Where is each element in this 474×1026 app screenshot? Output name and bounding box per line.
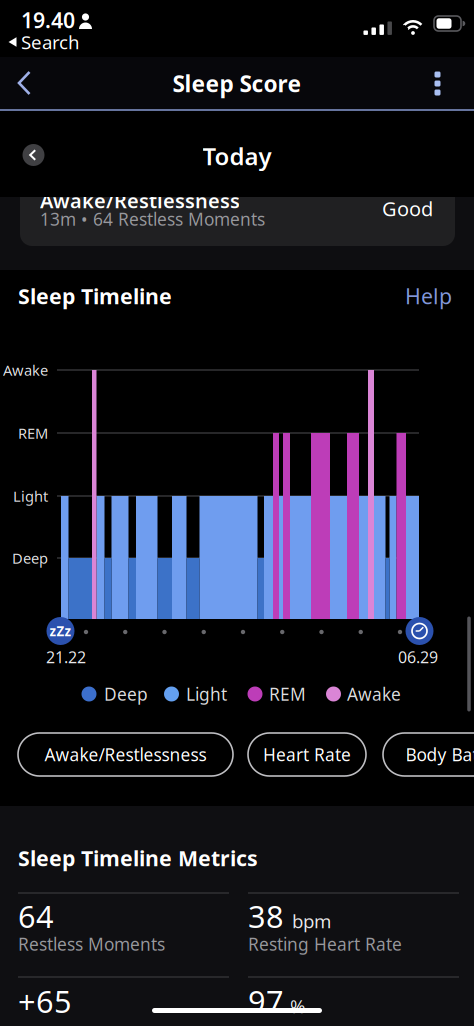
staticText: Awake (3, 360, 48, 380)
staticText: REM (18, 423, 48, 443)
button[interactable]: Previous (22, 144, 44, 166)
staticText: bpm (292, 909, 331, 933)
staticText: Awake (347, 682, 401, 705)
staticText: Sleep Score (172, 68, 301, 98)
staticText: Help (405, 282, 452, 310)
staticText: Good (382, 195, 433, 222)
staticText: zZz (49, 622, 71, 640)
button[interactable]: Back (17, 71, 32, 95)
button[interactable]: Back to Search (0, 30, 90, 54)
staticText: 19.40 (21, 6, 75, 34)
staticText: 38 (248, 896, 284, 936)
staticText: % (290, 994, 306, 1018)
staticText: Awake/Restlessness (44, 743, 206, 766)
staticText: Deep (12, 548, 48, 568)
staticText: 64 (18, 896, 54, 936)
button[interactable]: More options (434, 71, 440, 95)
staticText: 06.29 (398, 646, 438, 668)
staticText: Awake/Restlessness (40, 187, 240, 214)
staticText: Sleep Timeline Metrics (18, 844, 258, 872)
button[interactable]: Awake/Restlessness (20, 160, 455, 246)
staticText: Deep (104, 682, 148, 705)
staticText: Heart Rate (263, 743, 351, 766)
staticText: Light (13, 486, 48, 506)
staticText: Resting Heart Rate (248, 932, 402, 955)
staticText: 97 (248, 981, 284, 1021)
button[interactable]: Body Battery (383, 733, 474, 776)
staticText: Restless Moments (18, 932, 165, 955)
staticText: Today (202, 140, 271, 172)
button[interactable]: Heart Rate (248, 733, 366, 776)
button[interactable]: Awake/Restlessness (18, 733, 233, 776)
staticText: REM (269, 682, 306, 705)
staticText: Body Battery (405, 743, 474, 766)
staticText: Search (21, 30, 80, 54)
staticText: Light (186, 682, 227, 705)
button[interactable]: Help (392, 281, 452, 311)
staticText: Sleep Timeline (18, 282, 172, 310)
staticText: 13m • 64 Restless Moments (40, 207, 265, 230)
staticText: +65 (18, 981, 72, 1021)
staticText: 21.22 (46, 646, 86, 668)
